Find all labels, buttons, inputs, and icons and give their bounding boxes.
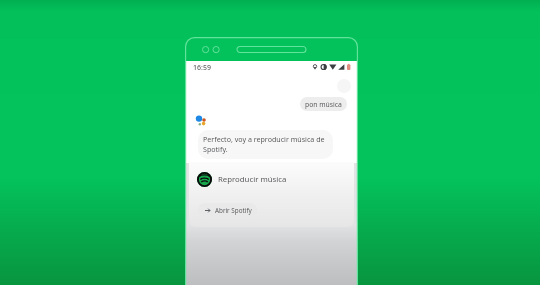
- staticText: Abrir Spotify: [215, 206, 252, 215]
- button[interactable]: Reproducir música: [189, 168, 354, 190]
- button[interactable]: Abrir Spotify: [198, 203, 257, 218]
- staticText: pon música: [305, 100, 342, 109]
- staticText: Reproducir música: [218, 174, 287, 185]
- button[interactable]: pon música: [300, 97, 347, 111]
- other: Abrir Spotify: [204, 207, 211, 214]
- staticText: 16:59: [193, 63, 211, 73]
- staticText: Perfecto, voy a reproducir música de Spo…: [203, 134, 329, 154]
